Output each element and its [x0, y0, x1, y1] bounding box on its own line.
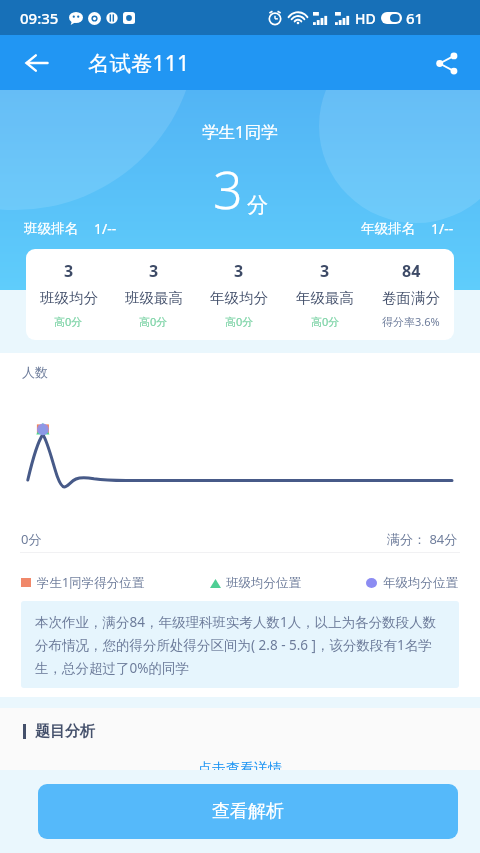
staticText: 题目分析	[35, 722, 95, 741]
staticText: 09:35	[20, 8, 59, 28]
staticText: 学生1同学得分位置	[37, 574, 145, 591]
staticText: 分	[247, 192, 268, 218]
staticText: 名试卷111	[88, 48, 190, 77]
staticText: 84	[402, 260, 421, 282]
staticText: 61	[406, 8, 424, 28]
staticText: 学生1同学	[202, 120, 278, 143]
staticText: HD	[355, 9, 376, 28]
staticText: 年级均分位置	[383, 575, 458, 591]
staticText: 年级均分	[210, 289, 268, 307]
staticText: 年级排名	[361, 220, 415, 237]
staticText: 3	[149, 260, 159, 282]
staticText: 3	[213, 153, 243, 224]
staticText: 高0分	[54, 314, 83, 329]
staticText: 高0分	[225, 314, 254, 329]
staticText: 人数	[22, 364, 48, 380]
button[interactable]: Back	[12, 38, 62, 88]
staticText: 查看解析	[212, 800, 284, 823]
staticText: 高0分	[311, 314, 340, 329]
staticText: 点击查看详情	[198, 760, 282, 770]
staticText: 0分	[21, 530, 42, 548]
staticText: 1/--	[94, 219, 117, 238]
button[interactable]: Share	[422, 38, 472, 88]
button[interactable]: 点击查看详情	[198, 760, 282, 770]
staticText: 班级排名	[24, 220, 78, 237]
staticText: 高0分	[139, 314, 168, 329]
staticText: 1/--	[431, 219, 454, 238]
staticText: 年级最高	[296, 289, 354, 307]
staticText: 满分： 84分	[387, 530, 458, 548]
staticText: 本次作业，满分84，年级理科班实考人数1人，以上为各分数段人数分布情况，您的得分…	[35, 613, 446, 677]
staticText: 班级最高	[125, 289, 183, 307]
staticText: 3	[320, 260, 330, 282]
button[interactable]: 查看解析	[38, 784, 458, 839]
staticText: 得分率3.6%	[382, 314, 440, 329]
staticText: 班级均分	[40, 289, 98, 307]
staticText: 3	[234, 260, 244, 282]
staticText: 3	[64, 260, 74, 282]
staticText: 卷面满分	[382, 289, 440, 307]
staticText: 班级均分位置	[226, 575, 301, 591]
